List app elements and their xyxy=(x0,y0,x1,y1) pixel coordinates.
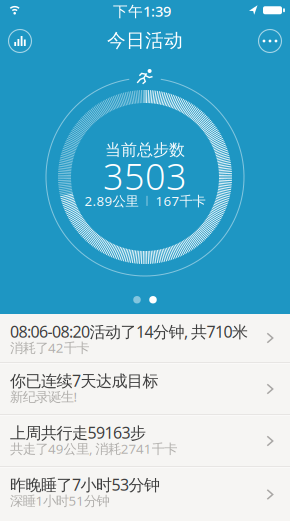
button[interactable]: 上周共行走59163步 xyxy=(0,416,290,466)
staticText: 深睡1小时51分钟 xyxy=(10,492,110,509)
staticText: 昨晚睡了7小时53分钟 xyxy=(10,474,160,495)
staticText: 167千卡 xyxy=(155,192,205,210)
staticText: 2.89公里 xyxy=(84,192,138,210)
button[interactable]: 统计 xyxy=(5,26,35,56)
staticText: 你已连续7天达成目标 xyxy=(10,370,158,391)
staticText: 上周共行走59163步 xyxy=(10,422,146,443)
staticText: 当前总步数 xyxy=(105,140,185,160)
staticText: 消耗了42千卡 xyxy=(10,339,89,356)
button[interactable]: 你已连续7天达成目标 xyxy=(0,364,290,414)
staticText: 今日活动 xyxy=(107,29,183,52)
staticText: 08:06-08:20活动了14分钟, 共710米 xyxy=(10,321,248,342)
staticText: 共走了49公里, 消耗2741千卡 xyxy=(10,440,177,457)
button[interactable]: 08:06-08:20活动了14分钟, 共710米 xyxy=(0,314,290,362)
staticText: 3503 xyxy=(103,152,187,200)
staticText: 下午1:39 xyxy=(113,1,171,21)
button[interactable]: 昨晚睡了7小时53分钟 xyxy=(0,468,290,521)
button[interactable]: 更多 xyxy=(255,26,285,56)
staticText: 新纪录诞生! xyxy=(10,388,77,405)
